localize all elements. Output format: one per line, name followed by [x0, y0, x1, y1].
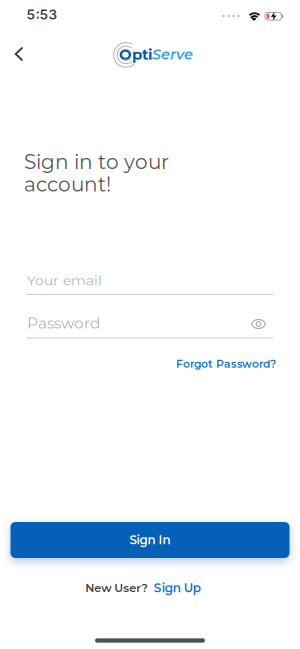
button[interactable]	[6, 38, 31, 69]
staticText: Opti	[119, 45, 152, 63]
staticText: Your email	[27, 272, 102, 289]
staticText: Serve	[152, 45, 193, 63]
button[interactable]: Sign Up	[154, 581, 201, 595]
staticText: 5:53	[26, 6, 57, 23]
staticText: Sign in to your	[24, 150, 169, 174]
staticText: New User?	[85, 581, 148, 595]
staticText: Sign In	[129, 533, 170, 547]
staticText: Sign Up	[154, 581, 201, 595]
staticText: Password	[27, 314, 100, 332]
staticText: account!	[24, 172, 111, 196]
button[interactable]: Sign In	[10, 522, 289, 558]
button[interactable]	[247, 315, 269, 333]
staticText: Forgot Password?	[176, 357, 276, 371]
button[interactable]: Forgot Password?	[176, 357, 276, 371]
